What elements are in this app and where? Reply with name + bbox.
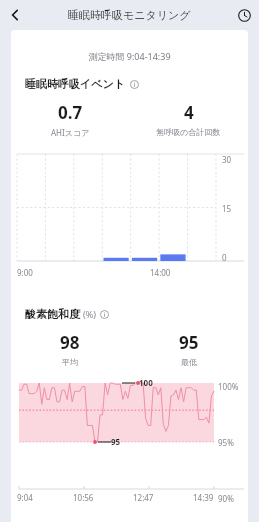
staticText: 10:56	[73, 492, 94, 503]
staticText: 90%	[218, 493, 234, 504]
staticText: 9:00	[17, 267, 33, 278]
staticText: 15	[222, 203, 232, 212]
button[interactable]: 95	[129, 331, 248, 367]
staticText: 睡眠時呼吸モニタリング	[68, 8, 191, 22]
button[interactable]: 酸素飽和度	[11, 307, 248, 321]
staticText: 4	[184, 101, 194, 124]
staticText: 95%	[218, 437, 234, 448]
staticText: 30	[222, 154, 232, 163]
button[interactable]: 4	[129, 101, 248, 137]
staticText: AHIスコア	[51, 127, 90, 138]
button[interactable]: 98	[11, 331, 129, 367]
button[interactable]: 0.7	[11, 101, 129, 138]
staticText: 平均	[62, 357, 78, 367]
staticText: 0.7	[58, 101, 83, 124]
staticText: 0	[222, 252, 227, 261]
staticText: 14:00	[150, 267, 171, 278]
staticText: 睡眠時呼吸イベント	[25, 77, 126, 91]
staticText: 酸素飽和度	[25, 307, 80, 321]
staticText: 無呼吸の合計回数	[156, 127, 221, 137]
staticText: 100%	[218, 381, 239, 392]
button[interactable]: 睡眠時呼吸イベント	[11, 77, 248, 91]
button[interactable]: History	[229, 0, 259, 30]
staticText: 95	[111, 436, 121, 447]
staticText: 100	[139, 377, 153, 388]
staticText: 98	[60, 331, 80, 354]
staticText: 95	[179, 331, 199, 354]
staticText: 9:04	[17, 492, 33, 503]
staticText: 14:39	[193, 492, 214, 503]
staticText: (%)	[83, 308, 96, 320]
staticText: 12:47	[133, 492, 154, 503]
staticText: 測定時間 9:04-14:39	[11, 50, 248, 62]
button[interactable]: Back	[0, 0, 30, 30]
staticText: 最低	[181, 357, 197, 367]
